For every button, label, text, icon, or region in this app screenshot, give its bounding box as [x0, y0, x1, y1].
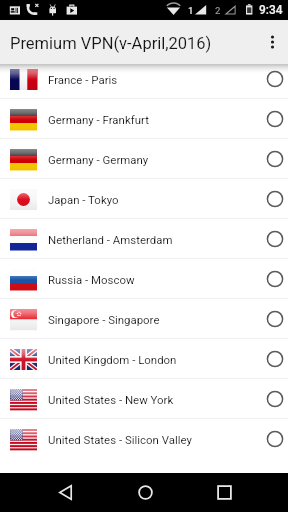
staticText: Germany - Germany [48, 153, 149, 166]
staticText: 9:34 [259, 3, 283, 17]
staticText: France - Paris [48, 73, 118, 86]
staticText: United States - Silicon Valley [48, 433, 192, 446]
staticText: United Kingdom - London [48, 353, 177, 366]
button[interactable]: Japan - Tokyo [0, 179, 288, 219]
staticText: Russia - Moscow [48, 273, 135, 286]
staticText: Netherland - Amsterdam [48, 233, 173, 246]
button[interactable]: Netherland - Amsterdam [0, 219, 288, 259]
button[interactable]: France - Paris [0, 59, 288, 99]
button[interactable]: United Kingdom - London [0, 339, 288, 379]
button[interactable]: Home [123, 473, 167, 512]
button[interactable]: Russia - Moscow [0, 259, 288, 299]
staticText: United States - New York [48, 393, 174, 406]
staticText: 1 [188, 5, 194, 16]
staticText: Germany - Frankfurt [48, 113, 149, 126]
staticText: Japan - Tokyo [48, 193, 119, 206]
button[interactable]: Germany - Frankfurt [0, 99, 288, 139]
staticText: Premium VPN(v-April,2016) [10, 34, 212, 53]
button[interactable]: Singapore - Singapore [0, 299, 288, 339]
button[interactable]: United States - New York [0, 379, 288, 419]
staticText: Singapore - Singapore [48, 313, 160, 326]
button[interactable]: Recent apps [202, 473, 246, 512]
button[interactable]: More options [254, 20, 288, 64]
staticText: 2 [215, 5, 221, 16]
button[interactable]: Back [43, 473, 87, 512]
button[interactable]: United States - Silicon Valley [0, 419, 288, 459]
button[interactable]: Germany - Germany [0, 139, 288, 179]
